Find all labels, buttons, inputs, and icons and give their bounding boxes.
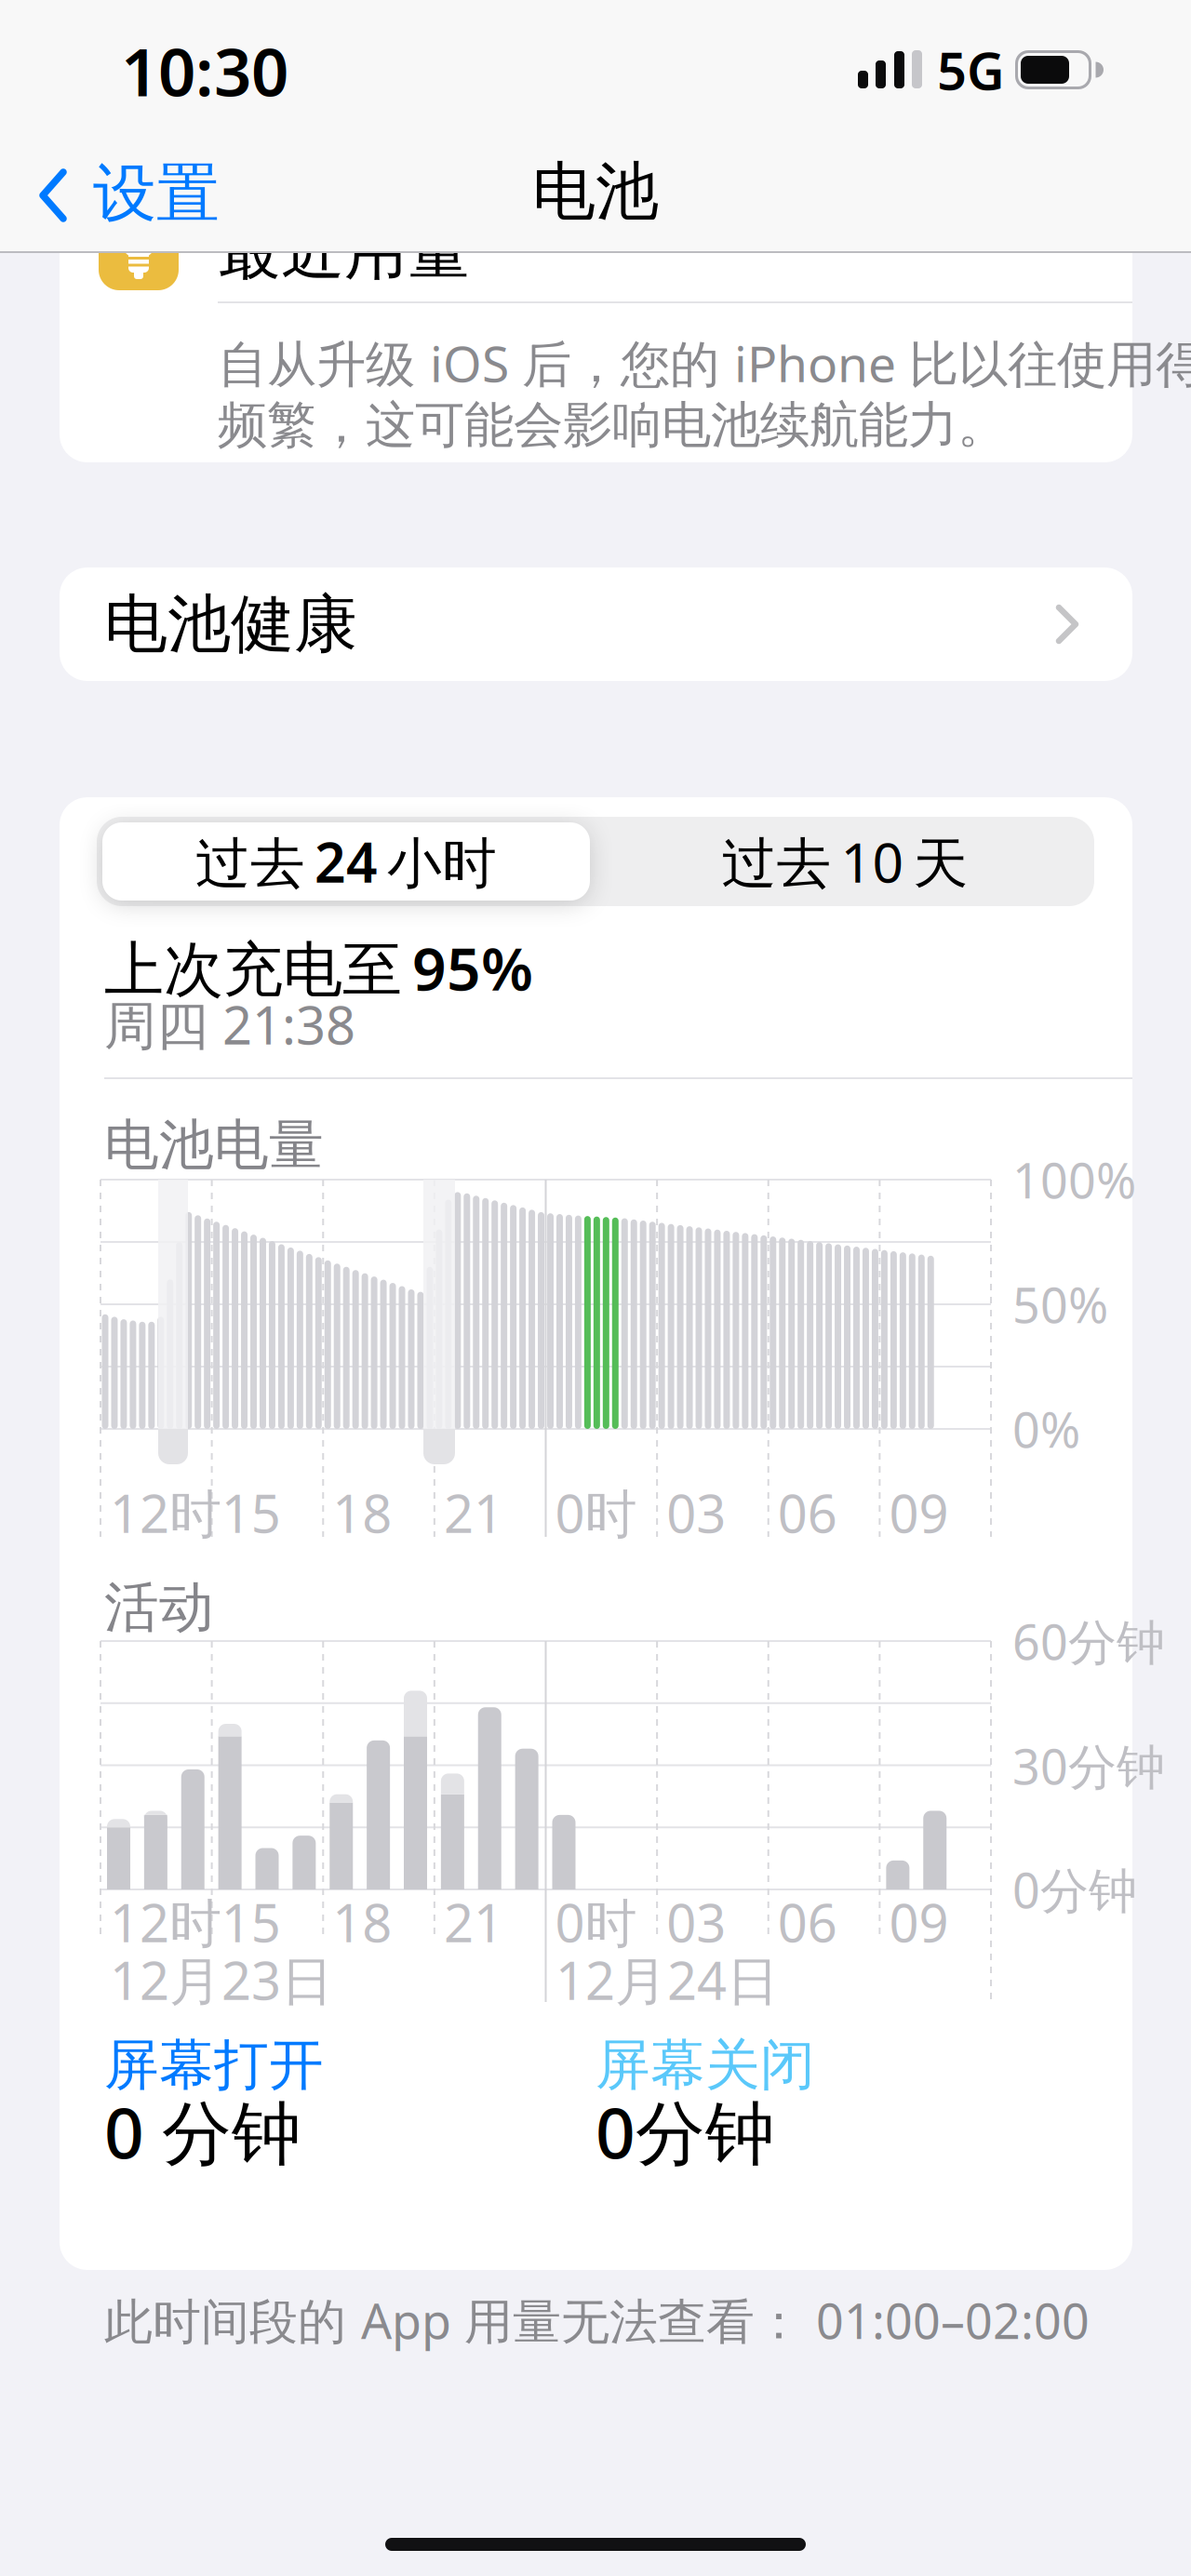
- staticText: 60分钟: [1012, 1609, 1165, 1673]
- staticText: 21: [444, 1887, 503, 1957]
- staticText: 周四 21:38: [104, 990, 355, 1059]
- staticText: 0分钟: [1012, 1857, 1137, 1922]
- staticText: 电池健康: [104, 585, 357, 663]
- staticText: 12时: [110, 1887, 221, 1957]
- staticText: 电池电量: [104, 1112, 324, 1179]
- staticText: 18: [332, 1478, 392, 1547]
- staticText: 10:30: [121, 27, 288, 114]
- staticText: 03: [666, 1478, 726, 1547]
- staticText: 12月23日: [110, 1945, 333, 2014]
- staticText: 06: [778, 1478, 837, 1547]
- staticText: 过去 24 小时: [195, 825, 497, 898]
- staticText: 最近用量: [218, 212, 471, 290]
- staticText: 上次充电至 95%: [104, 928, 533, 1007]
- staticText: 频繁，这可能会影响电池续航能力。: [218, 395, 1007, 456]
- button[interactable]: 返回设置: [0, 0, 1191, 2576]
- staticText: 15: [221, 1478, 281, 1547]
- staticText: 0时: [555, 1478, 637, 1547]
- staticText: 电池: [532, 153, 659, 230]
- staticText: 此时间段的 App 用量无法查看： 01:00–02:00: [104, 2288, 1090, 2352]
- button[interactable]: 过去 10 天: [0, 0, 484, 78]
- staticText: 15: [221, 1887, 281, 1957]
- staticText: 50%: [1012, 1272, 1108, 1336]
- staticText: 12月24日: [555, 1945, 779, 2014]
- staticText: 屏幕打开: [104, 2032, 324, 2099]
- staticText: 0分钟: [595, 2085, 775, 2177]
- staticText: 0 分钟: [104, 2085, 301, 2177]
- staticText: 0%: [1012, 1397, 1080, 1461]
- staticText: 12时: [110, 1478, 221, 1547]
- staticText: 5G: [937, 35, 1005, 104]
- staticText: 21: [444, 1478, 503, 1547]
- staticText: 设置: [93, 155, 220, 232]
- staticText: 自从升级 iOS 后，您的 iPhone 比以往使用得更: [218, 330, 1191, 396]
- staticText: 03: [666, 1887, 726, 1957]
- staticText: 0时: [555, 1887, 637, 1957]
- button[interactable]: 电池健康: [0, 0, 1191, 2576]
- button[interactable]: 过去 24 小时: [0, 0, 558, 78]
- staticText: 过去 10 天: [722, 825, 968, 898]
- staticText: 09: [889, 1887, 949, 1957]
- staticText: 09: [889, 1478, 949, 1547]
- staticText: 活动: [104, 1574, 214, 1641]
- staticText: 100%: [1012, 1148, 1136, 1212]
- staticText: 06: [778, 1887, 837, 1957]
- staticText: 30分钟: [1012, 1734, 1165, 1798]
- staticText: 屏幕关闭: [595, 2032, 815, 2099]
- staticText: 18: [332, 1887, 392, 1957]
